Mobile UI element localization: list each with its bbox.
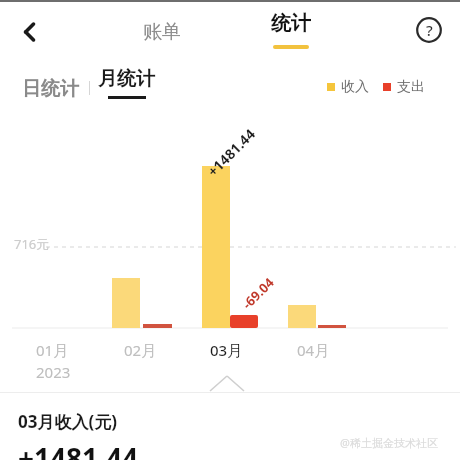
staticText: +1481.44: [203, 125, 259, 180]
staticText: 统计: [271, 11, 311, 36]
staticText: 03月收入(元): [18, 410, 117, 433]
staticText: 日统计: [22, 77, 79, 101]
staticText: 04月: [297, 340, 330, 360]
staticText: @稀土掘金技术社区: [340, 435, 438, 450]
button[interactable]: Back: [6, 8, 54, 56]
staticText: 02月: [124, 340, 157, 360]
staticText: 账单: [143, 20, 181, 44]
staticText: 2023: [36, 362, 71, 382]
staticText: +1481.44: [18, 439, 138, 460]
staticText: -69.04: [238, 273, 278, 313]
staticText: 月统计: [98, 67, 155, 91]
button[interactable]: Help: [406, 7, 452, 53]
staticText: 01月: [36, 340, 69, 360]
staticText: 03月: [210, 340, 243, 360]
staticText: 收入: [341, 78, 369, 96]
staticText: 支出: [397, 78, 425, 96]
staticText: 716元: [14, 235, 50, 253]
button[interactable]: 月统计: [98, 67, 155, 113]
button[interactable]: 统计: [256, 4, 326, 60]
button[interactable]: 账单: [128, 7, 196, 57]
staticText: ?: [426, 20, 433, 40]
button[interactable]: 03月: [208, 338, 245, 362]
button[interactable]: 日统计: [18, 69, 83, 109]
